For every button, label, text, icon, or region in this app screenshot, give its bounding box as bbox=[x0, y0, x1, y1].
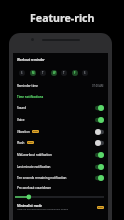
staticText: Voice bbox=[17, 118, 25, 122]
staticText: PRO bbox=[98, 206, 103, 209]
staticText: M bbox=[32, 71, 35, 75]
button[interactable]: Last minute notification bbox=[13, 161, 108, 172]
staticText: Mid-workout notification bbox=[17, 153, 52, 157]
staticText: Time notifications bbox=[17, 95, 44, 99]
staticText: Workout reminder bbox=[17, 58, 45, 62]
staticText: Ten seconds remaining notification bbox=[17, 176, 67, 180]
staticText: Sound bbox=[17, 106, 27, 110]
staticText: Pre-workout countdown bbox=[17, 186, 52, 190]
button[interactable]: Minimalist mode bbox=[13, 204, 108, 211]
staticText: Reminder time bbox=[17, 84, 38, 88]
button[interactable]: Vibration bbox=[13, 126, 108, 137]
staticText: Feature-rich bbox=[30, 11, 95, 25]
button[interactable]: Ten seconds remaining notification bbox=[13, 172, 108, 183]
staticText: PRO bbox=[28, 141, 33, 144]
button[interactable]: F bbox=[72, 70, 78, 76]
button[interactable]: Off bbox=[95, 129, 104, 135]
staticText: S bbox=[21, 71, 23, 75]
staticText: W bbox=[53, 71, 56, 75]
button[interactable]: Off bbox=[95, 140, 104, 146]
button[interactable]: W bbox=[51, 70, 57, 76]
button[interactable]: Flash bbox=[13, 137, 108, 148]
button[interactable]: S bbox=[19, 70, 25, 76]
button[interactable]: Mid-workout notification bbox=[13, 149, 108, 160]
staticText: Last minute notification bbox=[17, 165, 51, 169]
button[interactable]: On bbox=[95, 175, 104, 181]
button[interactable]: T bbox=[40, 70, 46, 76]
button[interactable]: M bbox=[30, 70, 36, 76]
staticText: T bbox=[42, 71, 44, 75]
staticText: Hide the next exercise from the workout … bbox=[17, 208, 69, 211]
button[interactable]: T bbox=[61, 70, 67, 76]
staticText: F bbox=[74, 71, 76, 75]
button[interactable]: Countdown slider bbox=[15, 194, 104, 200]
button[interactable]: On bbox=[95, 117, 104, 123]
staticText: Minimalist mode bbox=[17, 204, 43, 208]
button[interactable]: S bbox=[82, 70, 88, 76]
staticText: Vibration bbox=[17, 130, 30, 134]
button[interactable]: On bbox=[95, 105, 104, 111]
button[interactable]: Sound bbox=[13, 102, 108, 113]
button[interactable]: On bbox=[95, 164, 104, 170]
button[interactable]: Voice bbox=[13, 114, 108, 125]
staticText: T bbox=[63, 71, 65, 75]
staticText: 07:00 AM bbox=[92, 84, 104, 88]
staticText: PRO bbox=[33, 130, 38, 133]
button[interactable]: On bbox=[95, 152, 104, 158]
staticText: Flash bbox=[17, 141, 25, 145]
button[interactable]: Reminder time bbox=[13, 80, 108, 91]
staticText: S bbox=[84, 71, 86, 75]
